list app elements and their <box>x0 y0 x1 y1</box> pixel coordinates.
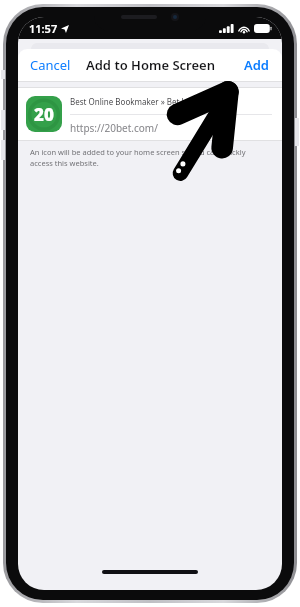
button[interactable]: 20 <box>18 88 282 140</box>
staticText: 20 <box>34 103 54 126</box>
staticText: Add to Home Screen <box>86 56 215 74</box>
button[interactable]: Add <box>232 50 282 80</box>
staticText: Best Online Bookmaker » Bet Legal with .… <box>70 96 229 107</box>
button[interactable]: Cancel <box>18 50 83 80</box>
staticText: An icon will be added to your home scree… <box>30 147 270 168</box>
staticText: Add <box>244 56 270 74</box>
staticText: https://20bet.com/ <box>70 121 158 135</box>
staticText: Cancel <box>30 56 71 74</box>
other: Tap the Add button <box>166 85 238 183</box>
staticText: 11:57 <box>29 21 58 36</box>
